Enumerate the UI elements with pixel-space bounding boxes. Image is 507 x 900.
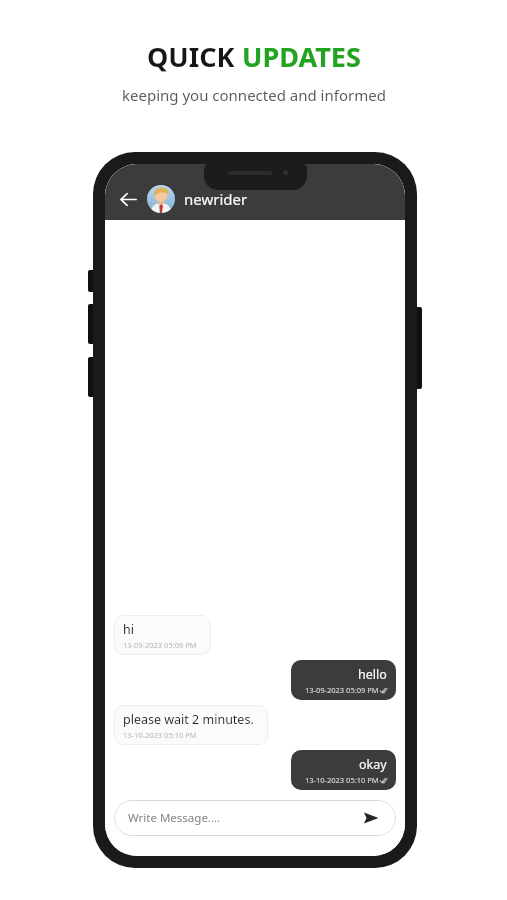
button[interactable]: Profile photo [147, 185, 175, 213]
staticText: keeping you connected and informed [122, 85, 386, 105]
button[interactable]: hello [291, 660, 396, 700]
staticText: 13-10-2023 05:10 PM [305, 775, 379, 785]
button[interactable]: Back [113, 184, 143, 214]
button[interactable]: Write Message.... [114, 800, 396, 836]
button[interactable]: please wait 2 minutes. [114, 705, 268, 745]
staticText: Write Message.... [128, 810, 360, 826]
staticText: please wait 2 minutes. [123, 711, 254, 728]
staticText: hi [123, 621, 134, 638]
button[interactable]: Send [360, 807, 382, 829]
staticText: 13-10-2023 05:10 PM [123, 730, 197, 740]
button[interactable]: okay [291, 750, 396, 790]
staticText: 13-09-2023 05:09 PM [305, 685, 379, 695]
staticText: UPDATES [242, 38, 361, 75]
staticText: 13-09-2023 05:09 PM [123, 640, 197, 650]
button[interactable]: hi [114, 615, 211, 655]
staticText: newrider [184, 189, 248, 209]
staticText: QUICK [147, 38, 242, 75]
staticText: hello [358, 666, 387, 683]
staticText: okay [359, 756, 387, 773]
